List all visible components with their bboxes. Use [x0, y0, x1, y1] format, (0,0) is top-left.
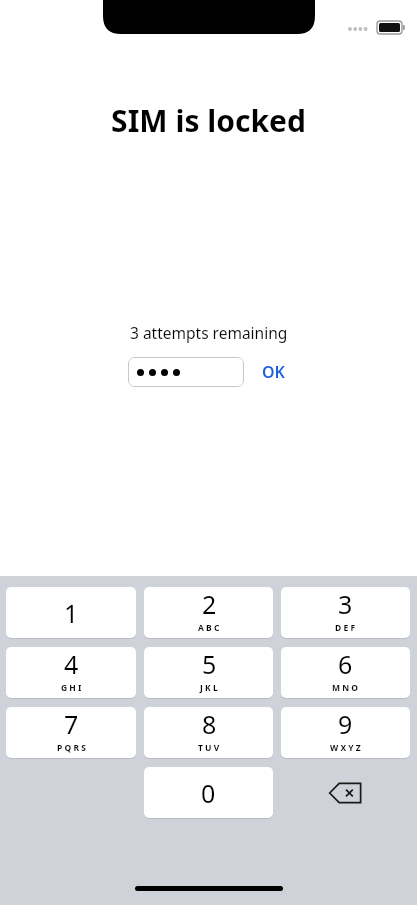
staticText: M N O: [332, 682, 359, 694]
staticText: OK: [262, 361, 285, 383]
staticText: D E F: [335, 622, 356, 634]
staticText: 9: [338, 707, 353, 741]
staticText: 1: [64, 596, 79, 630]
staticText: G H I: [61, 682, 82, 694]
staticText: P Q R S: [57, 742, 86, 754]
staticText: 3 attempts remaining: [130, 322, 288, 343]
staticText: 3: [338, 587, 353, 621]
button[interactable]: 6: [281, 647, 410, 698]
button[interactable]: 1: [6, 587, 136, 638]
button[interactable]: 5: [144, 647, 273, 698]
button[interactable]: 4: [6, 647, 136, 698]
button[interactable]: 9: [281, 707, 410, 758]
staticText: T U V: [198, 742, 220, 754]
staticText: 4: [64, 647, 79, 681]
staticText: A B C: [198, 622, 220, 634]
button[interactable]: [128, 357, 244, 387]
button[interactable]: Backspace: [281, 767, 410, 818]
button[interactable]: 7: [6, 707, 136, 758]
staticText: SIM is locked: [111, 100, 306, 141]
button[interactable]: 0: [144, 767, 273, 818]
staticText: W X Y Z: [330, 742, 361, 754]
staticText: 2: [202, 587, 217, 621]
button[interactable]: 2: [144, 587, 273, 638]
staticText: 0: [201, 776, 216, 810]
staticText: 8: [202, 707, 217, 741]
staticText: 6: [338, 647, 353, 681]
staticText: 5: [202, 647, 217, 681]
button[interactable]: 8: [144, 707, 273, 758]
button[interactable]: 3: [281, 587, 410, 638]
staticText: J K L: [200, 682, 218, 694]
staticText: 7: [64, 707, 79, 741]
button[interactable]: OK: [258, 357, 289, 387]
